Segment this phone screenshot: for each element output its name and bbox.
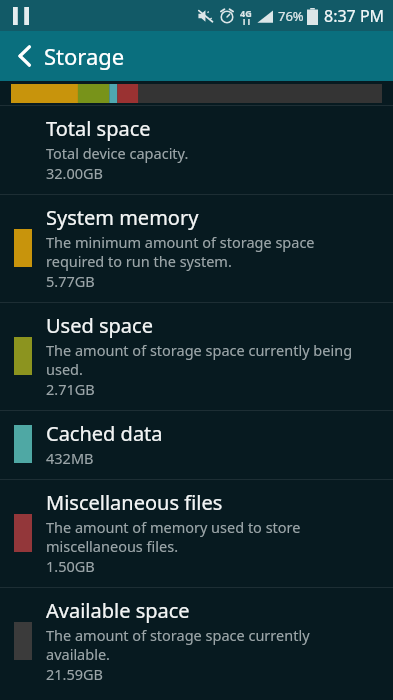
button[interactable]: Miscellaneous files bbox=[0, 480, 393, 587]
staticText: 32.00GB bbox=[46, 163, 104, 183]
staticText: Total device capacity. bbox=[46, 143, 189, 163]
button[interactable]: Total space bbox=[0, 106, 393, 194]
staticText: 4G bbox=[240, 7, 252, 19]
button[interactable]: Back bbox=[0, 31, 393, 81]
staticText: 432MB bbox=[46, 448, 94, 468]
staticText: System memory bbox=[46, 204, 199, 231]
staticText: The amount of storage space currently be… bbox=[46, 340, 353, 379]
staticText: Miscellaneous files bbox=[46, 489, 223, 516]
staticText: 21.59GB bbox=[46, 664, 104, 684]
button[interactable]: Used space bbox=[0, 303, 393, 410]
button[interactable]: Back bbox=[10, 41, 40, 71]
button[interactable]: Available space bbox=[0, 588, 393, 695]
staticText: 8:37 PM bbox=[324, 5, 385, 27]
staticText: 1.50GB bbox=[46, 556, 95, 576]
staticText: Storage bbox=[44, 41, 125, 71]
staticText: Cached data bbox=[46, 420, 163, 447]
button[interactable]: Cached data bbox=[0, 411, 393, 479]
staticText: 5.77GB bbox=[46, 271, 95, 291]
staticText: Total space bbox=[46, 115, 151, 142]
staticText: Available space bbox=[46, 597, 190, 624]
staticText: 2.71GB bbox=[46, 379, 95, 399]
staticText: The amount of storage space currently av… bbox=[46, 625, 310, 664]
button[interactable]: System memory bbox=[0, 195, 393, 302]
staticText: Used space bbox=[46, 312, 153, 339]
staticText: 76% bbox=[278, 7, 304, 25]
staticText: The minimum amount of storage space requ… bbox=[46, 232, 315, 271]
staticText: The amount of memory used to store misce… bbox=[46, 517, 301, 556]
